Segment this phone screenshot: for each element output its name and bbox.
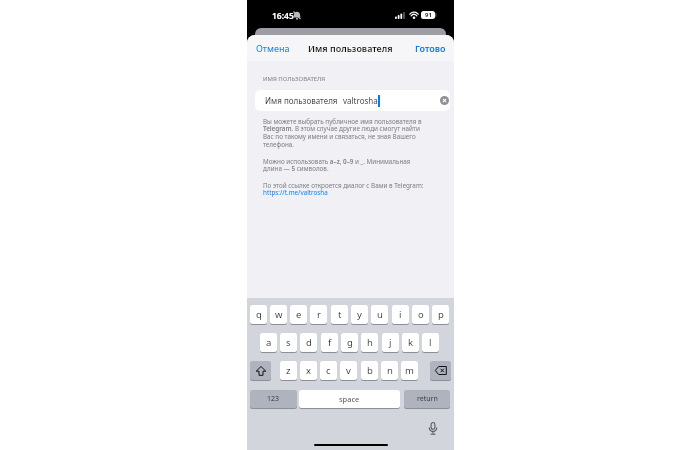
staticText: n	[387, 364, 393, 377]
button[interactable]: 123	[250, 390, 297, 408]
button[interactable]: x	[300, 361, 317, 380]
staticText: 16:45	[272, 10, 294, 22]
button[interactable]: k	[402, 333, 419, 352]
button[interactable]: g	[341, 333, 358, 352]
staticText: w	[275, 308, 283, 321]
staticText: 91	[425, 11, 432, 19]
staticText: Можно использовать a–z, 0–9 и _. Минимал…	[263, 157, 411, 173]
button[interactable]: z	[280, 361, 297, 380]
button[interactable]: e	[290, 305, 307, 324]
staticText: r	[317, 308, 321, 321]
button[interactable]: y	[351, 305, 368, 324]
button[interactable]	[430, 361, 451, 380]
staticText: Имя пользователя	[308, 42, 393, 54]
staticText: g	[347, 336, 353, 349]
button[interactable]: r	[310, 305, 327, 324]
button[interactable]: s	[280, 333, 297, 352]
button[interactable]: m	[401, 361, 418, 380]
button[interactable]: q	[250, 305, 267, 324]
staticText: q	[256, 308, 262, 321]
staticText: c	[326, 364, 331, 377]
staticText: x	[306, 364, 312, 377]
staticText: Имя пользователя	[265, 95, 338, 106]
button[interactable]: i	[392, 305, 409, 324]
button[interactable]: h	[361, 333, 378, 352]
button[interactable]: space	[299, 390, 400, 408]
button[interactable]: return	[404, 390, 450, 408]
button[interactable]: j	[382, 333, 399, 352]
staticText: k	[408, 336, 414, 349]
button[interactable]: u	[371, 305, 388, 324]
button[interactable]	[250, 361, 271, 380]
staticText: o	[418, 308, 424, 321]
button[interactable]: c	[320, 361, 337, 380]
staticText: l	[429, 336, 432, 349]
button[interactable]: d	[300, 333, 317, 352]
button[interactable]: Отмена	[256, 41, 298, 55]
staticText: i	[399, 308, 402, 321]
staticText: v	[346, 364, 351, 377]
button[interactable]: По этой ссылке откроется диалог с Вами в…	[263, 181, 424, 197]
staticText: h	[367, 336, 373, 349]
staticText: Готово	[415, 42, 446, 54]
staticText: Вы можете выбрать публичное имя пользова…	[263, 117, 422, 149]
staticText: z	[286, 364, 291, 377]
staticText: j	[389, 336, 392, 349]
button[interactable]: v	[340, 361, 357, 380]
staticText: valtrosha	[343, 95, 378, 106]
button[interactable]: Имя пользователя	[255, 90, 450, 111]
button[interactable]: w	[270, 305, 287, 324]
button[interactable]: Готово	[405, 41, 446, 55]
staticText: m	[405, 364, 414, 377]
button[interactable]: p	[432, 305, 449, 324]
staticText: По этой ссылке откроется диалог с Вами в…	[263, 181, 424, 197]
staticText: Отмена	[256, 42, 290, 54]
staticText: a	[266, 336, 272, 349]
staticText: d	[306, 336, 312, 349]
staticText: 123	[267, 394, 280, 404]
staticText: space	[339, 394, 360, 404]
button[interactable]: a	[260, 333, 277, 352]
button[interactable]: l	[422, 333, 439, 352]
staticText: t	[338, 308, 342, 321]
staticText: e	[296, 308, 302, 321]
button[interactable]: n	[381, 361, 398, 380]
button[interactable]: t	[331, 305, 348, 324]
staticText: s	[286, 336, 291, 349]
button[interactable]: b	[361, 361, 378, 380]
staticText: u	[377, 308, 383, 321]
staticText: f	[328, 336, 332, 349]
staticText: return	[417, 394, 438, 404]
staticText: ИМЯ ПОЛЬЗОВАТЕЛЯ	[263, 75, 326, 83]
staticText: p	[438, 308, 444, 321]
button[interactable]: o	[412, 305, 429, 324]
button[interactable]: f	[321, 333, 338, 352]
staticText: b	[367, 364, 373, 377]
staticText: y	[357, 308, 362, 321]
